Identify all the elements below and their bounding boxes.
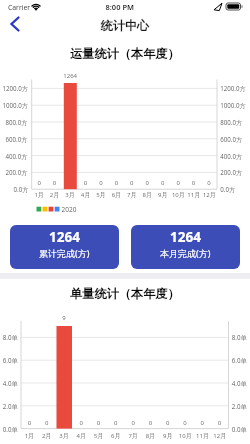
button[interactable]: [10, 225, 119, 269]
button[interactable]: [131, 225, 240, 269]
button[interactable]: [6, 14, 26, 34]
